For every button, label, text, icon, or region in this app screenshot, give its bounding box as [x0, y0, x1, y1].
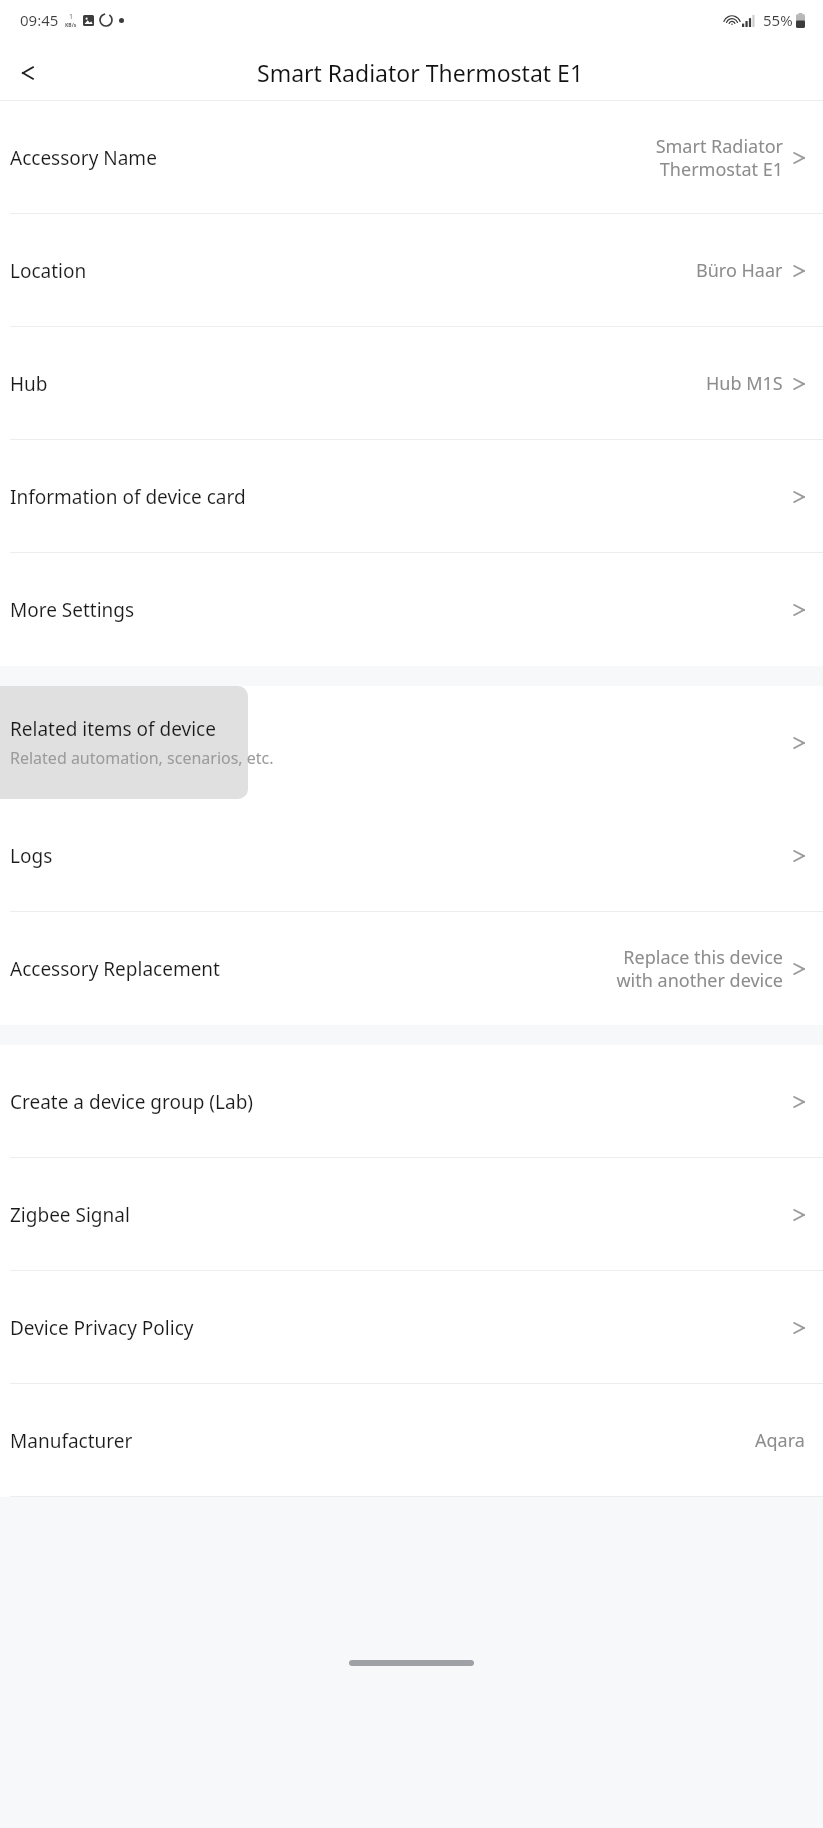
staticText: Hub M1S: [706, 371, 783, 396]
button[interactable]: Accessory Replacement: [0, 912, 823, 1025]
button[interactable]: Accessory Name: [0, 101, 823, 214]
button[interactable]: Create a device group (Lab): [0, 1045, 823, 1158]
staticText: Replace this device with another device: [616, 945, 783, 992]
staticText: More Settings: [10, 597, 783, 623]
staticText: KB/s: [65, 22, 77, 29]
staticText: Aqara: [755, 1428, 805, 1453]
staticText: Smart Radiator Thermostat E1: [655, 134, 783, 181]
staticText: Zigbee Signal: [10, 1202, 783, 1228]
button[interactable]: Hub: [0, 327, 823, 440]
staticText: Logs: [10, 843, 783, 869]
staticText: Manufacturer: [10, 1428, 755, 1454]
button[interactable]: Device Privacy Policy: [0, 1271, 823, 1384]
staticText: 1: [69, 12, 74, 22]
staticText: Smart Radiator Thermostat E1: [257, 57, 584, 88]
staticText: Related automation, scenarios, etc.: [10, 747, 274, 769]
staticText: Accessory Name: [10, 145, 157, 171]
button[interactable]: More Settings: [0, 553, 823, 666]
staticText: Create a device group (Lab): [10, 1089, 783, 1115]
staticText: Information of device card: [10, 484, 783, 510]
staticText: Related items of device: [10, 716, 216, 742]
staticText: Device Privacy Policy: [10, 1315, 783, 1341]
staticText: Büro Haar: [696, 258, 783, 283]
button[interactable]: Zigbee Signal: [0, 1158, 823, 1271]
button[interactable]: Back: [6, 53, 46, 93]
staticText: Accessory Replacement: [10, 956, 220, 982]
button[interactable]: Information of device card: [0, 440, 823, 553]
staticText: 55%: [763, 10, 793, 30]
button[interactable]: Logs: [0, 799, 823, 912]
staticText: 09:45: [20, 10, 59, 30]
button[interactable]: Location: [0, 214, 823, 327]
button[interactable]: Manufacturer: [0, 1384, 823, 1497]
button[interactable]: Related items of device: [0, 686, 823, 799]
staticText: Location: [10, 258, 696, 284]
staticText: Hub: [10, 371, 706, 397]
